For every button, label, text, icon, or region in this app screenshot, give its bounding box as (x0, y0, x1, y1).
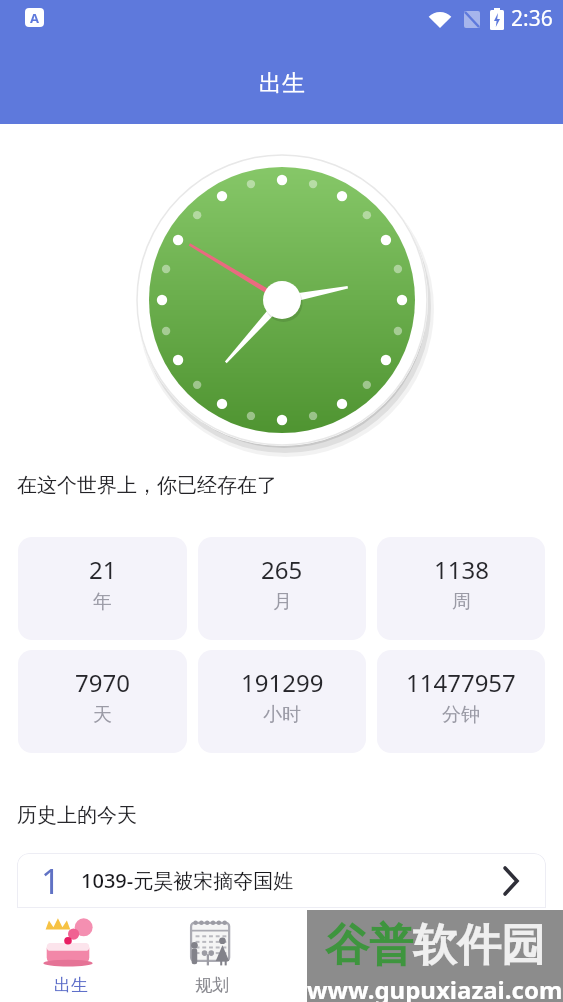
staticText: 年 (93, 590, 112, 614)
staticText: 历史上的今天 (17, 803, 137, 828)
staticText: 11477957 (406, 666, 516, 699)
staticText: 21 (89, 553, 117, 586)
staticText: 分钟 (442, 703, 480, 727)
staticText: 1 (41, 858, 61, 904)
staticText: 265 (261, 553, 303, 586)
staticText: 191299 (241, 666, 324, 699)
staticText: 2:36 (511, 4, 553, 33)
button[interactable]: 11477957 (377, 650, 545, 753)
button[interactable]: 规划 (141, 908, 282, 1002)
button[interactable]: 191299 (198, 650, 366, 753)
staticText: A (30, 9, 39, 27)
staticText: 在这个世界上，你已经存在了 (17, 473, 277, 498)
staticText: 软件园 (413, 918, 545, 973)
staticText: 出生 (54, 975, 88, 996)
button[interactable]: 265 (198, 537, 366, 640)
staticText: 天 (93, 703, 112, 727)
staticText: 周 (452, 590, 471, 614)
staticText: 出生 (259, 69, 305, 98)
staticText: www.gupuxiazai.com (307, 973, 563, 1002)
staticText: 1138 (434, 553, 489, 586)
button[interactable]: 1138 (377, 537, 545, 640)
staticText: 小时 (263, 703, 301, 727)
staticText: 7970 (75, 666, 130, 699)
button[interactable]: 21 (18, 537, 187, 640)
button[interactable]: 1 (17, 853, 546, 908)
staticText: 月 (273, 590, 292, 614)
staticText: 谷普 (325, 918, 413, 973)
button[interactable]: 出生 (0, 908, 141, 1002)
staticText: 1039-元昊被宋摘夺国姓 (81, 867, 294, 894)
button[interactable]: 7970 (18, 650, 187, 753)
staticText: 规划 (195, 975, 229, 996)
